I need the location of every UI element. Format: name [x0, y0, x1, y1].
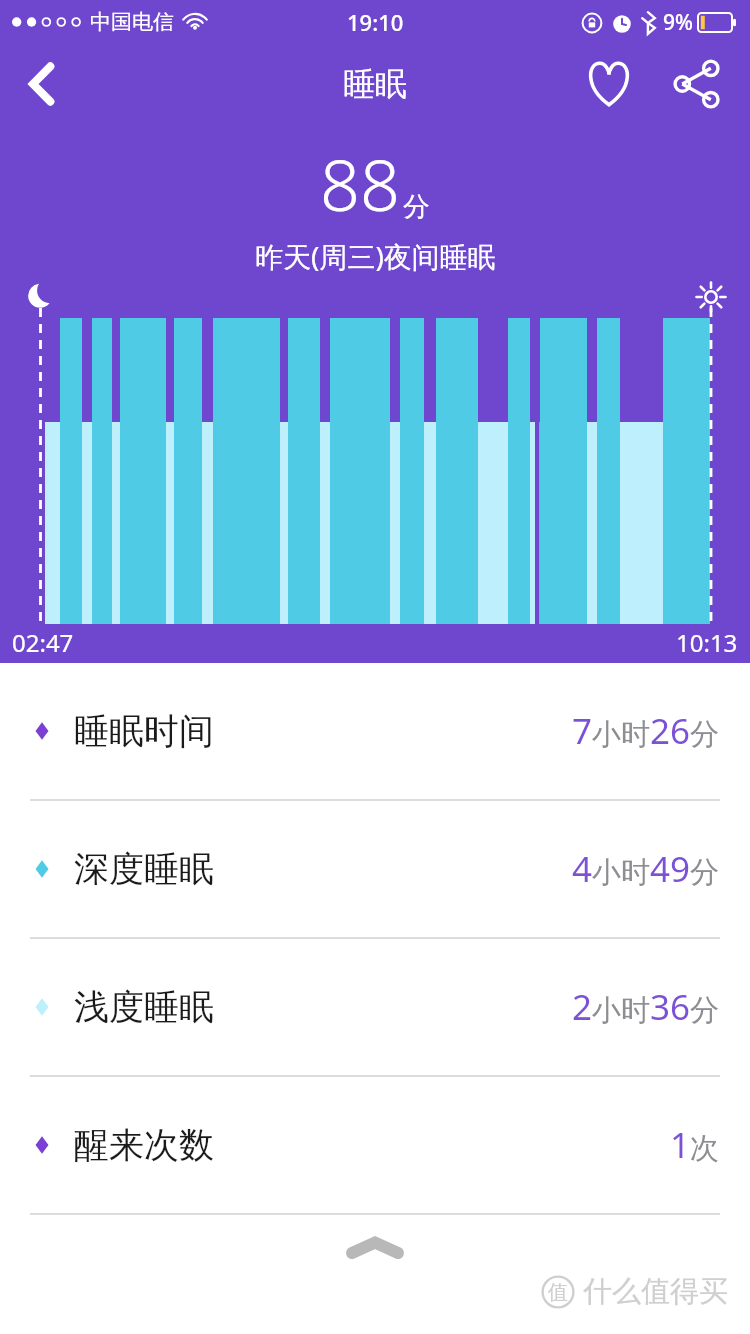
staticText: 10:13 [676, 626, 738, 659]
button[interactable]: 睡眠时间 [0, 663, 750, 799]
staticText: 7小时26分 [572, 707, 720, 755]
staticText: 19:10 [347, 7, 404, 37]
staticText: 睡眠 [343, 64, 407, 104]
staticText: 浅度睡眠 [74, 985, 214, 1029]
button[interactable]: Share [660, 47, 734, 121]
staticText: 02:47 [12, 626, 74, 659]
staticText: 4小时49分 [572, 845, 720, 893]
staticText: 什么值得买 [583, 1273, 728, 1310]
staticText: 醒来次数 [74, 1123, 214, 1167]
button[interactable]: 深度睡眠 [0, 801, 750, 937]
staticText: 2小时36分 [572, 983, 720, 1031]
staticText: 深度睡眠 [74, 847, 214, 891]
button[interactable]: Back [0, 44, 84, 124]
staticText: 1次 [670, 1121, 720, 1169]
button[interactable]: 浅度睡眠 [0, 939, 750, 1075]
button[interactable]: 醒来次数 [0, 1077, 750, 1213]
staticText: 值 [548, 1280, 568, 1305]
staticText: 88 [320, 136, 400, 231]
staticText: 分 [403, 190, 430, 224]
staticText: 睡眠时间 [74, 709, 214, 753]
staticText: 中国电信 [90, 9, 174, 35]
button[interactable]: Favorite [572, 47, 646, 121]
staticText: 昨天(周三)夜间睡眠 [255, 237, 496, 275]
staticText: 9% [663, 8, 693, 37]
